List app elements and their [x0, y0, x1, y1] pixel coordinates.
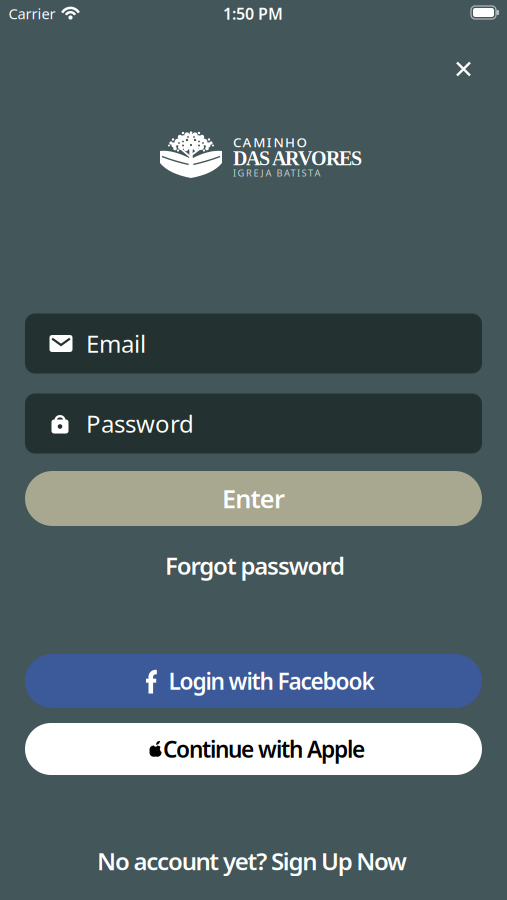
button[interactable]: Login with Facebook — [25, 654, 482, 708]
staticText: Enter — [222, 482, 285, 515]
staticText: Forgot password — [165, 550, 345, 581]
staticText: Continue with Apple — [163, 734, 365, 764]
staticText: Email — [86, 328, 146, 359]
staticText: Login with Facebook — [168, 666, 374, 696]
button[interactable]: No account yet? Sign Up Now — [97, 845, 407, 877]
button[interactable]: Enter — [25, 471, 482, 526]
button[interactable]: Email — [25, 313, 482, 373]
staticText: Carrier — [8, 4, 55, 23]
button[interactable]: Forgot password — [165, 550, 345, 581]
staticText: No account yet? Sign Up Now — [97, 845, 407, 877]
button[interactable]: Password — [25, 393, 482, 453]
staticText: 1:50 PM — [223, 3, 283, 24]
staticText: Password — [86, 408, 194, 439]
button[interactable]: Close — [441, 47, 485, 91]
staticText: IGREJA BATISTA — [233, 167, 320, 179]
button[interactable]: Continue with Apple — [25, 723, 482, 775]
staticText: CAMINHO — [233, 133, 307, 151]
staticText: DAS ARVORES — [233, 147, 362, 169]
